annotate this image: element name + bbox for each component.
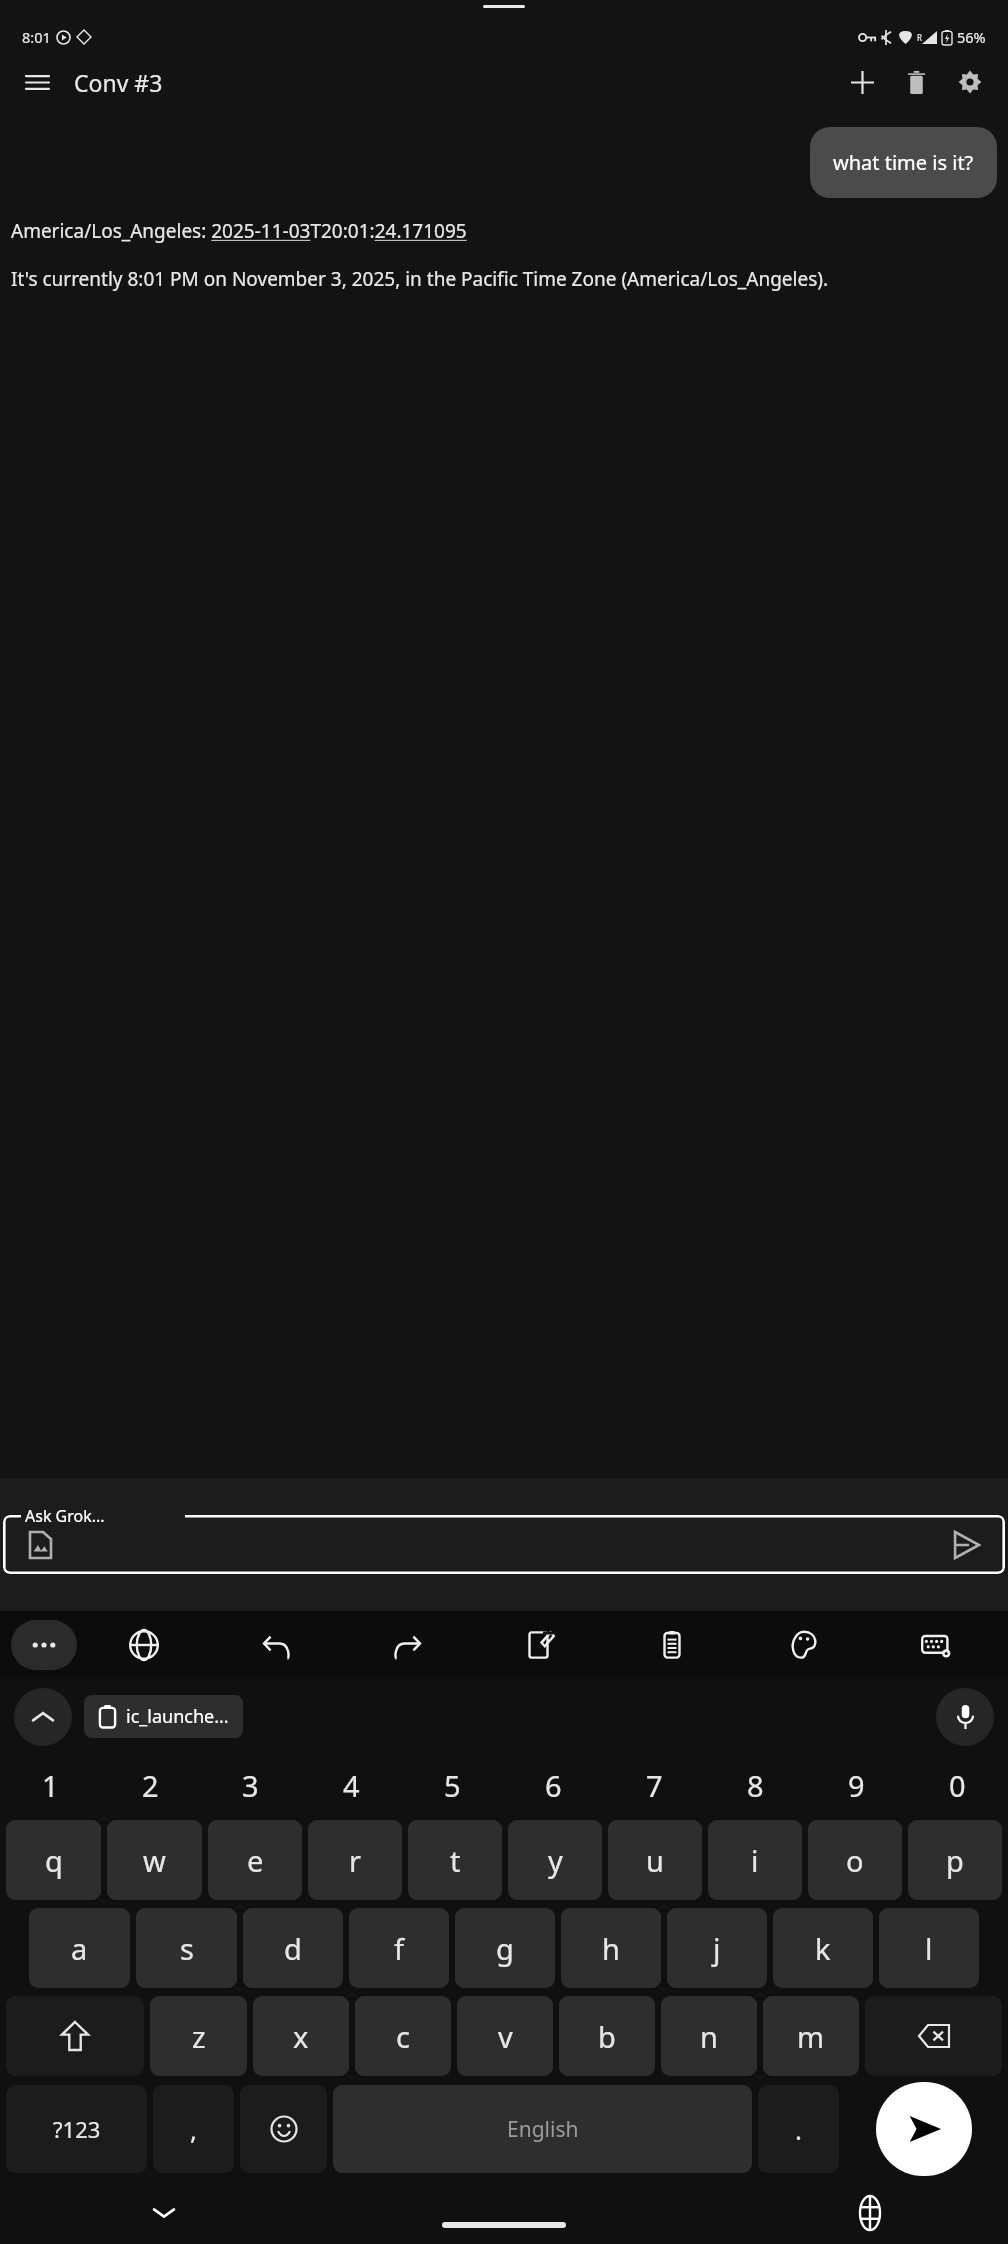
staticText: m: [797, 2017, 825, 2056]
staticText: g: [496, 1929, 514, 1968]
button[interactable]: z: [150, 1996, 247, 2076]
staticText: a: [71, 1929, 88, 1968]
staticText: o: [846, 1841, 864, 1880]
button[interactable]: g: [455, 1908, 555, 1988]
button[interactable]: j: [667, 1908, 767, 1988]
staticText: s: [180, 1929, 194, 1968]
staticText: h: [602, 1929, 620, 1968]
staticText: e: [247, 1841, 264, 1880]
staticText: ,: [190, 2112, 197, 2147]
button[interactable]: New conversation: [838, 58, 886, 106]
staticText: 4: [343, 1766, 360, 1805]
button[interactable]: d: [243, 1908, 343, 1988]
button[interactable]: s: [136, 1908, 237, 1988]
staticText: Conv #3: [74, 67, 163, 98]
staticText: 7: [646, 1766, 663, 1805]
button[interactable]: Language: [77, 1615, 210, 1675]
button[interactable]: c: [355, 1996, 451, 2076]
staticText: p: [946, 1841, 964, 1880]
staticText: l: [925, 1929, 933, 1968]
button[interactable]: Attach image: [20, 1525, 60, 1565]
button[interactable]: o: [808, 1820, 902, 1900]
staticText: what time is it?: [833, 149, 974, 176]
button[interactable]: 7: [604, 1754, 705, 1816]
button[interactable]: r: [308, 1820, 402, 1900]
button[interactable]: y: [508, 1820, 602, 1900]
button[interactable]: Clipboard: [606, 1615, 738, 1675]
button[interactable]: p: [908, 1820, 1002, 1900]
button[interactable]: Send: [944, 1523, 988, 1567]
staticText: 56%: [957, 27, 986, 47]
staticText: z: [192, 2017, 206, 2056]
button[interactable]: Voice input: [936, 1688, 994, 1746]
button[interactable]: Send: [876, 2082, 972, 2176]
button[interactable]: Expand: [14, 1688, 72, 1746]
button[interactable]: ic_launche...: [84, 1695, 243, 1738]
button[interactable]: t: [408, 1820, 502, 1900]
staticText: c: [396, 2017, 410, 2056]
staticText: r: [349, 1841, 361, 1880]
staticText: q: [45, 1841, 63, 1880]
button[interactable]: English: [333, 2085, 752, 2173]
staticText: 8:01: [22, 27, 51, 47]
button[interactable]: 4: [301, 1754, 402, 1816]
button[interactable]: 8: [705, 1754, 806, 1816]
button[interactable]: ,: [153, 2085, 234, 2173]
button[interactable]: a: [29, 1908, 130, 1988]
button[interactable]: k: [773, 1908, 873, 1988]
button[interactable]: x: [253, 1996, 349, 2076]
button[interactable]: e: [208, 1820, 302, 1900]
button[interactable]: Change language: [846, 2189, 894, 2237]
staticText: t: [450, 1841, 461, 1880]
button[interactable]: More: [11, 1620, 77, 1670]
button[interactable]: b: [559, 1996, 655, 2076]
button[interactable]: 5: [402, 1754, 503, 1816]
button[interactable]: n: [661, 1996, 757, 2076]
staticText: .: [795, 2112, 802, 2147]
button[interactable]: Redo: [342, 1615, 474, 1675]
button[interactable]: i: [708, 1820, 802, 1900]
staticText: 5: [444, 1766, 461, 1805]
button[interactable]: 2: [100, 1754, 200, 1816]
button[interactable]: what time is it?: [810, 127, 997, 198]
button[interactable]: m: [763, 1996, 859, 2076]
staticText: R: [917, 32, 922, 43]
button[interactable]: h: [561, 1908, 661, 1988]
button[interactable]: Delete: [892, 58, 940, 106]
button[interactable]: 0: [907, 1754, 1008, 1816]
staticText: d: [284, 1929, 302, 1968]
button[interactable]: ?123: [6, 2085, 147, 2173]
button[interactable]: Undo: [210, 1615, 342, 1675]
staticText: i: [751, 1841, 759, 1880]
button[interactable]: q: [6, 1820, 101, 1900]
button[interactable]: Shift: [6, 1996, 144, 2076]
button[interactable]: Settings: [946, 58, 994, 106]
staticText: b: [598, 2017, 616, 2056]
button[interactable]: u: [608, 1820, 702, 1900]
button[interactable]: Hide keyboard: [140, 2189, 188, 2237]
staticText: j: [713, 1929, 721, 1968]
button[interactable]: 9: [806, 1754, 907, 1816]
button[interactable]: Attach image: [3, 1515, 1005, 1574]
staticText: America/Los_Angeles: 2025-11-03T20:01:24…: [11, 218, 467, 244]
staticText: 2: [142, 1766, 159, 1805]
staticText: k: [815, 1929, 831, 1968]
button[interactable]: Edit: [474, 1615, 606, 1675]
button[interactable]: .: [758, 2085, 839, 2173]
button[interactable]: Backspace: [865, 1996, 1002, 2076]
staticText: ic_launche...: [126, 1704, 229, 1729]
staticText: 0: [949, 1766, 966, 1805]
button[interactable]: Menu: [14, 59, 60, 105]
button[interactable]: 6: [503, 1754, 604, 1816]
button[interactable]: 3: [200, 1754, 301, 1816]
button[interactable]: l: [879, 1908, 979, 1988]
button[interactable]: Emoji: [240, 2085, 327, 2173]
button[interactable]: w: [107, 1820, 202, 1900]
button[interactable]: v: [457, 1996, 553, 2076]
button[interactable]: Keyboard settings: [870, 1615, 1002, 1675]
button[interactable]: 1: [0, 1754, 100, 1816]
staticText: w: [143, 1841, 166, 1880]
staticText: v: [498, 2017, 513, 2056]
button[interactable]: f: [349, 1908, 449, 1988]
button[interactable]: Theme: [738, 1615, 870, 1675]
